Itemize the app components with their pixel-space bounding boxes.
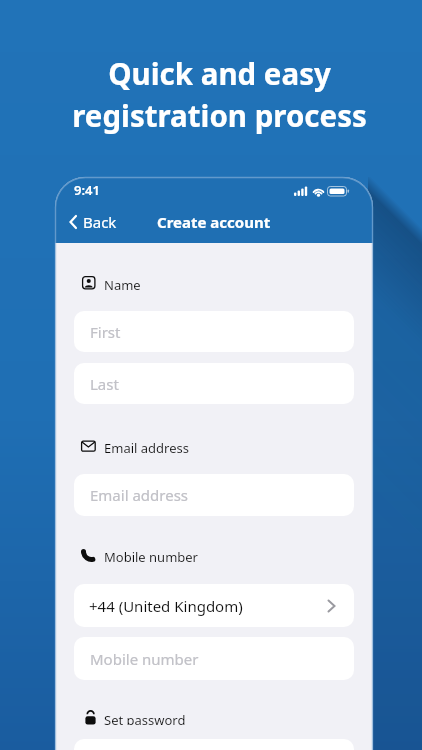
staticText: Set password bbox=[104, 711, 186, 725]
staticText: Email address bbox=[90, 485, 189, 505]
button[interactable]: +44 (United Kingdom) bbox=[74, 584, 354, 627]
staticText: 9:41 bbox=[74, 181, 100, 197]
button[interactable]: Back bbox=[68, 210, 128, 234]
staticText: registration process bbox=[72, 95, 367, 135]
staticText: +44 (United Kingdom) bbox=[89, 596, 243, 616]
staticText: Back bbox=[83, 212, 117, 232]
staticText: Quick and easy bbox=[108, 53, 331, 93]
button[interactable]: Last bbox=[74, 363, 354, 404]
staticText: Mobile number bbox=[90, 649, 199, 669]
staticText: Mobile number bbox=[104, 548, 198, 562]
staticText: Create account bbox=[157, 212, 271, 232]
button[interactable]: First bbox=[74, 311, 354, 352]
staticText: Last bbox=[90, 374, 119, 394]
staticText: First bbox=[90, 322, 121, 342]
button[interactable]: Email address bbox=[74, 474, 354, 516]
staticText: Name bbox=[104, 276, 141, 290]
staticText: Email address bbox=[104, 439, 189, 453]
button[interactable]: Mobile number bbox=[74, 637, 354, 680]
